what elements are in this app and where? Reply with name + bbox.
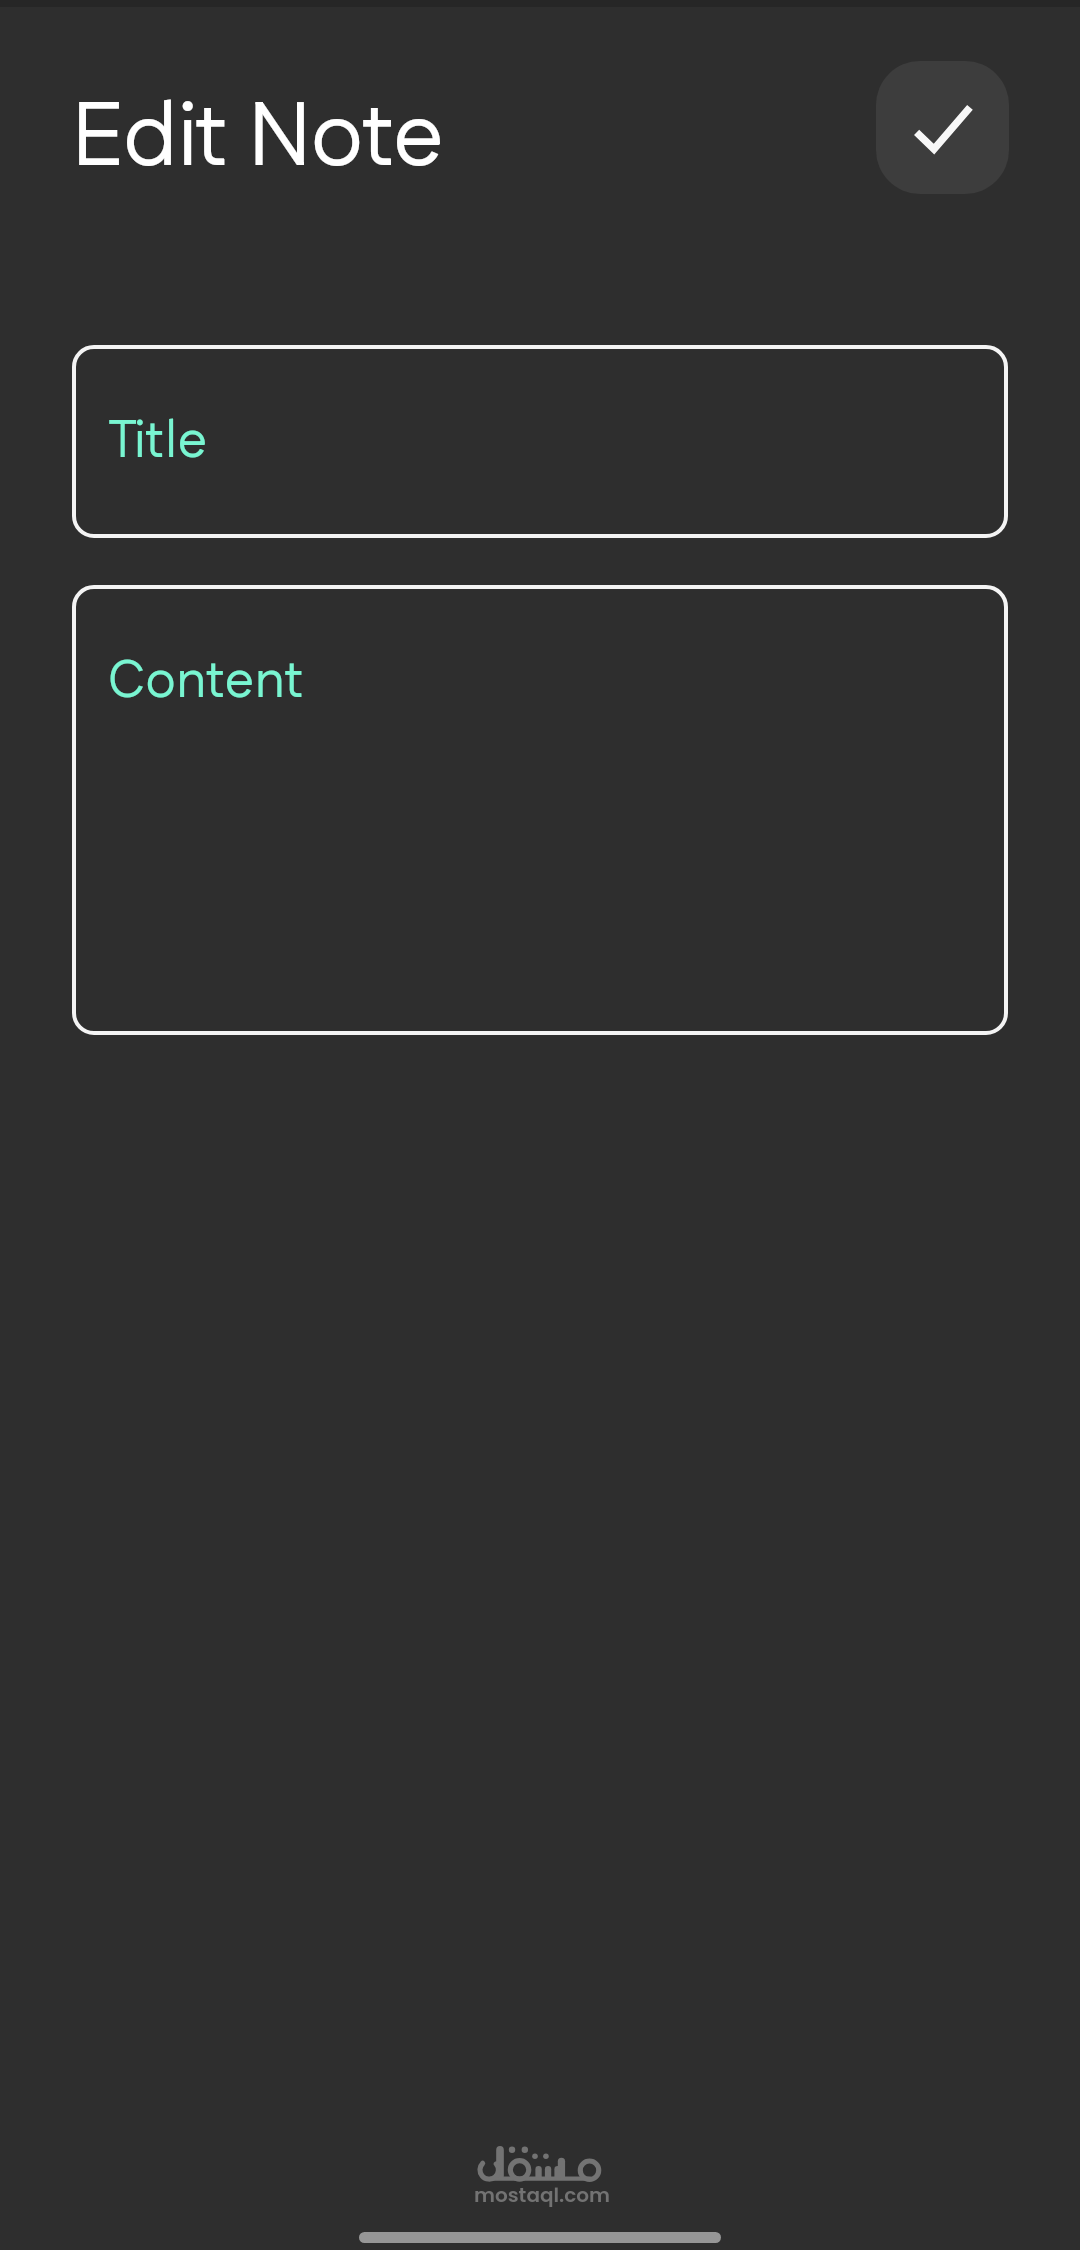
- staticText: Edit Note: [72, 75, 444, 203]
- staticText: Title: [108, 405, 208, 479]
- button[interactable]: Title: [72, 345, 1008, 538]
- staticText: Content: [108, 645, 305, 719]
- button[interactable]: Save note: [876, 61, 1009, 194]
- staticText: mostaql.com: [474, 2181, 611, 2209]
- button[interactable]: Content: [72, 585, 1008, 1035]
